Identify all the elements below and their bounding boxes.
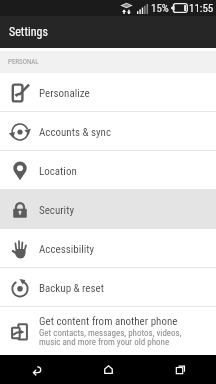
button[interactable]: Back	[0, 355, 72, 384]
staticText: Location	[39, 165, 77, 178]
staticText: Backup & reset	[39, 282, 104, 295]
staticText: 15%	[151, 2, 169, 15]
button[interactable]: Get content from another phone	[0, 307, 216, 355]
staticText: Accessibility	[39, 243, 95, 256]
button[interactable]: Home	[72, 355, 144, 384]
staticText: Get contacts, messages, photos, videos, …	[39, 328, 182, 347]
button[interactable]: Location	[0, 151, 216, 189]
button[interactable]: Accessibility	[0, 229, 216, 267]
button[interactable]: Security	[0, 190, 216, 228]
staticText: Get content from another phone	[39, 315, 178, 328]
staticText: Settings	[9, 25, 48, 39]
button[interactable]: Personalize	[0, 73, 216, 111]
staticText: Accounts & sync	[39, 126, 111, 139]
staticText: Security	[39, 204, 74, 217]
staticText: 11:55	[189, 2, 214, 15]
button[interactable]: Accounts & sync	[0, 112, 216, 150]
staticText: PERSONAL	[8, 58, 39, 66]
button[interactable]: Recent apps	[144, 355, 216, 384]
button[interactable]: Backup & reset	[0, 268, 216, 306]
staticText: Personalize	[39, 87, 90, 100]
